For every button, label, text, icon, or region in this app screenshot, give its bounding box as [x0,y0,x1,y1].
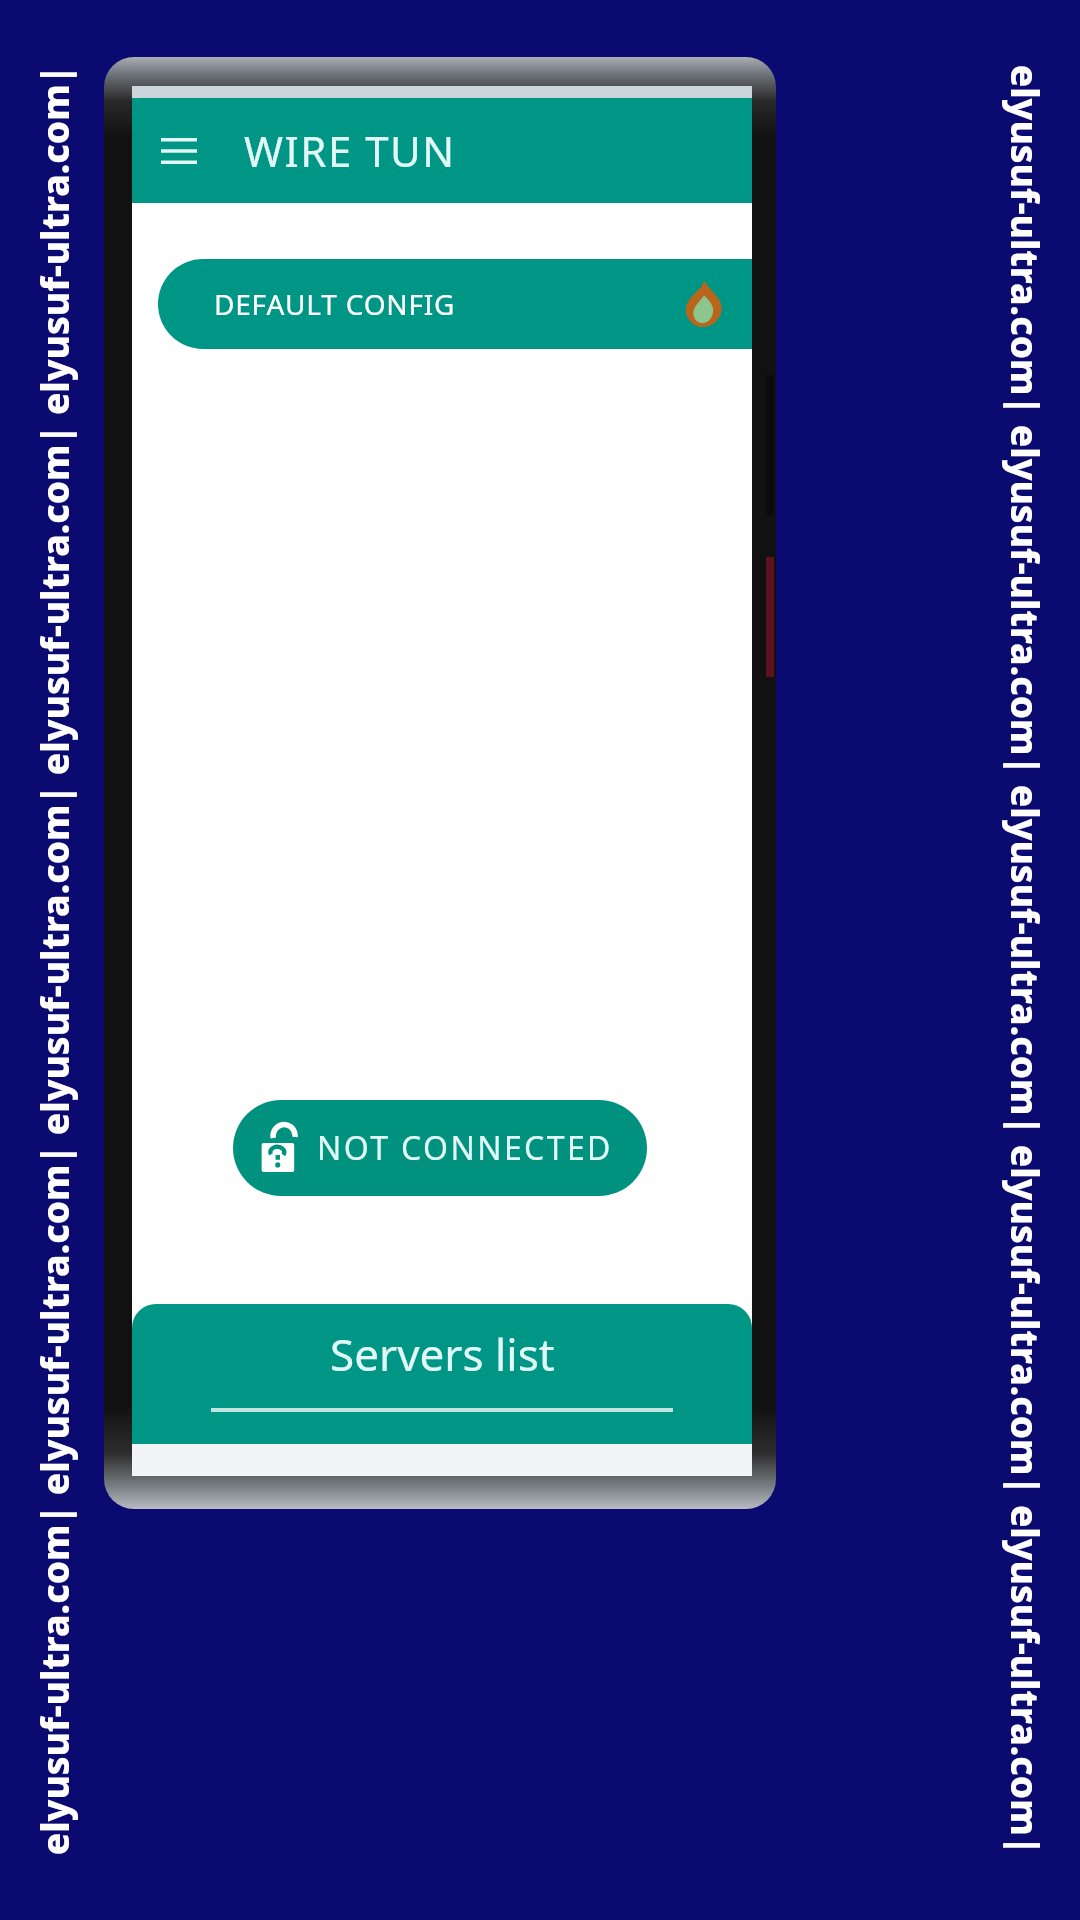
staticText: elyusuf-ultra.com| elyusuf-ultra.com| el… [29,0,79,1920]
staticText: Servers list [330,1324,555,1384]
button[interactable]: NOT CONNECTED [233,1100,647,1196]
staticText: WIRE TUN [244,122,456,179]
staticText: DEFAULT CONFIG [214,285,456,323]
button[interactable]: Servers list [132,1304,752,1444]
button[interactable]: DEFAULT CONFIG [158,259,752,349]
button[interactable]: Open navigation drawer [146,118,212,184]
staticText: elyusuf-ultra.com| elyusuf-ultra.com| el… [1001,0,1051,1920]
staticText: NOT CONNECTED [317,1126,613,1170]
